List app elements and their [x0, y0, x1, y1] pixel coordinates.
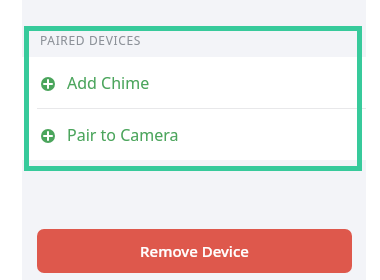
staticText: Add Chime [67, 72, 150, 94]
button[interactable]: Add Chime [0, 57, 380, 108]
button[interactable]: Pair to Camera [0, 109, 380, 160]
staticText: Pair to Camera [67, 124, 179, 146]
staticText: Remove Device [140, 241, 249, 261]
button[interactable]: Remove Device [37, 229, 352, 273]
staticText: PAIRED DEVICES [40, 32, 142, 48]
